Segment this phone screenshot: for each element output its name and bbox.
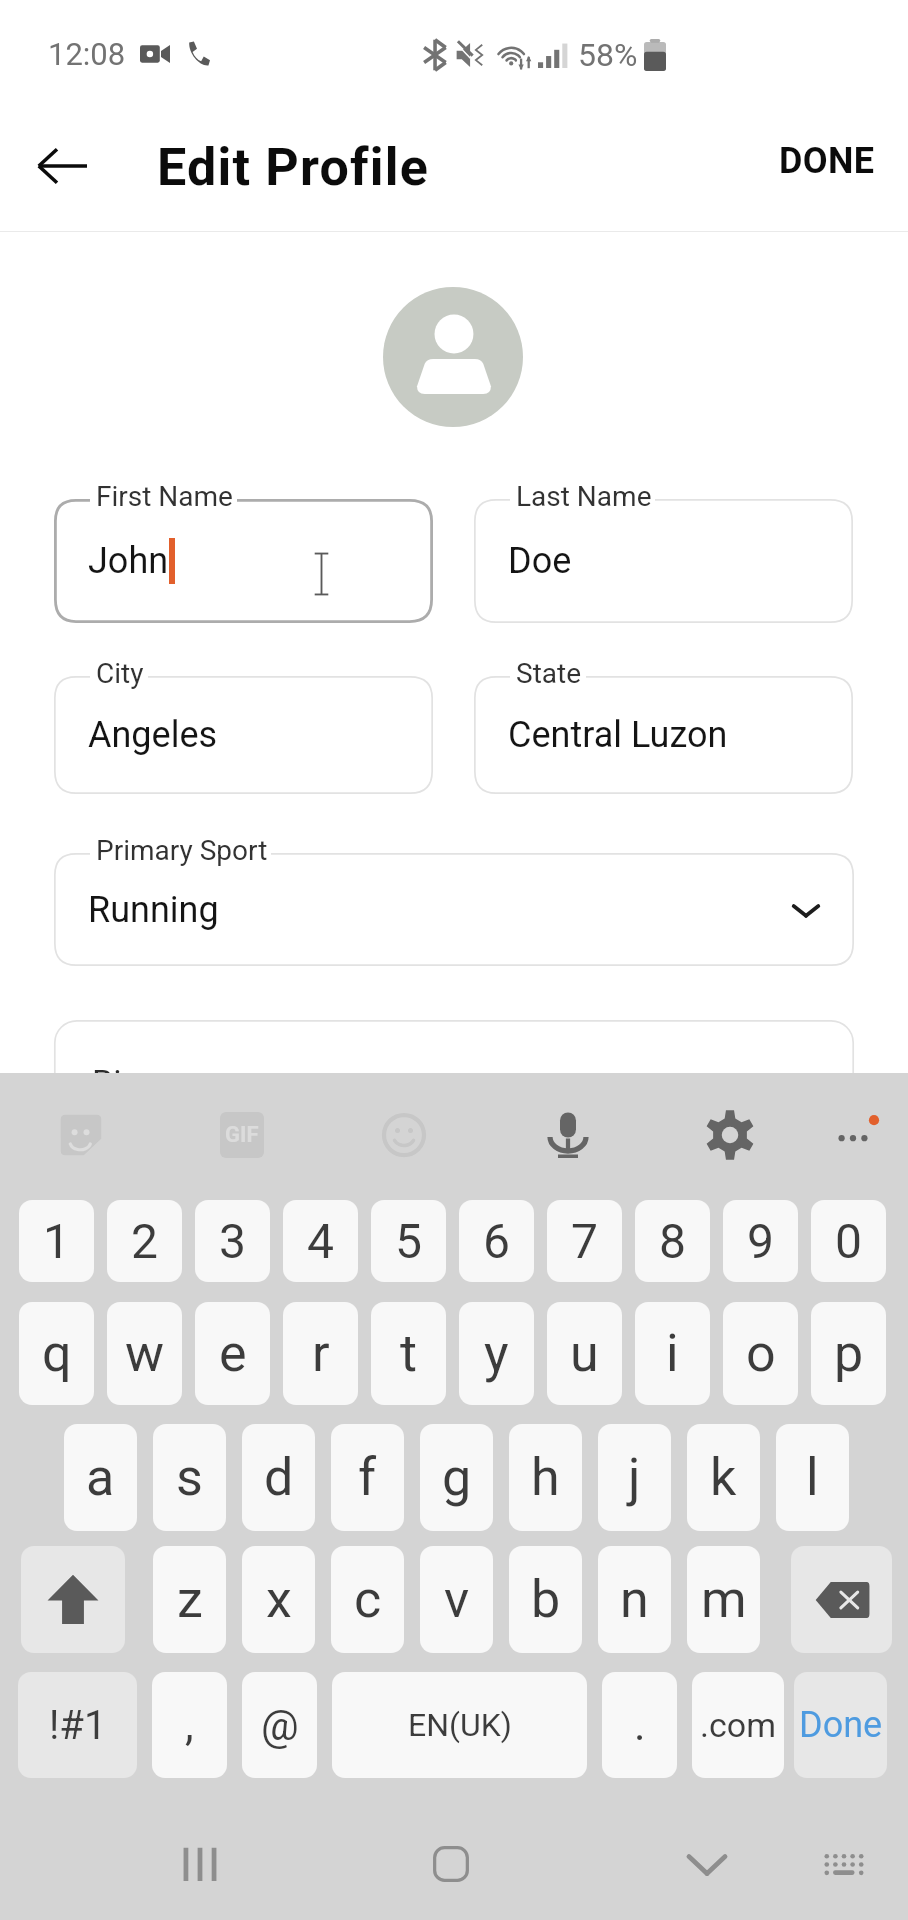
button[interactable]: Bio: [54, 1020, 854, 1180]
staticText: o: [746, 1323, 776, 1384]
button[interactable]: 3: [195, 1200, 270, 1282]
button[interactable]: l: [776, 1424, 849, 1531]
button[interactable]: EN(UK): [332, 1672, 587, 1778]
button[interactable]: 4: [283, 1200, 358, 1282]
button[interactable]: w: [107, 1302, 182, 1405]
button[interactable]: State: [474, 676, 853, 794]
button[interactable]: u: [547, 1302, 622, 1405]
button[interactable]: k: [687, 1424, 760, 1531]
button[interactable]: .com: [692, 1672, 784, 1778]
staticText: Running: [88, 889, 219, 931]
staticText: w: [125, 1323, 165, 1384]
button[interactable]: 8: [635, 1200, 710, 1282]
staticText: DONE: [779, 140, 875, 182]
button[interactable]: 1: [19, 1200, 94, 1282]
staticText: 5: [395, 1213, 422, 1269]
staticText: Angeles: [88, 714, 218, 756]
button[interactable]: 2: [107, 1200, 182, 1282]
button[interactable]: ,: [152, 1672, 227, 1778]
button[interactable]: @: [242, 1672, 317, 1778]
staticText: 0: [835, 1213, 862, 1269]
button[interactable]: x: [242, 1546, 315, 1653]
button[interactable]: h: [509, 1424, 582, 1531]
staticText: !#1: [49, 1702, 107, 1749]
button[interactable]: Keyboard tool: [364, 1095, 444, 1175]
staticText: u: [570, 1323, 599, 1384]
button[interactable]: Keyboard tool: [690, 1095, 770, 1175]
button[interactable]: n: [598, 1546, 671, 1653]
staticText: Done: [799, 1704, 883, 1746]
staticText: 6: [483, 1213, 510, 1269]
button[interactable]: GIF: [202, 1095, 282, 1175]
button[interactable]: Shift: [21, 1546, 125, 1653]
button[interactable]: r: [283, 1302, 358, 1405]
button[interactable]: g: [420, 1424, 493, 1531]
staticText: z: [177, 1569, 203, 1630]
button[interactable]: 9: [723, 1200, 798, 1282]
staticText: j: [628, 1447, 641, 1508]
button[interactable]: i: [635, 1302, 710, 1405]
button[interactable]: c: [331, 1546, 404, 1653]
button[interactable]: 0: [811, 1200, 886, 1282]
staticText: g: [442, 1447, 472, 1508]
button[interactable]: o: [723, 1302, 798, 1405]
staticText: h: [531, 1447, 560, 1508]
button[interactable]: v: [420, 1546, 493, 1653]
button[interactable]: Done: [794, 1672, 887, 1778]
button[interactable]: m: [687, 1546, 760, 1653]
button[interactable]: Change profile photo: [383, 287, 523, 427]
staticText: City: [96, 657, 144, 690]
button[interactable]: Hide keyboard: [673, 1830, 741, 1898]
button[interactable]: First Name: [54, 499, 433, 623]
staticText: 1: [43, 1213, 70, 1269]
staticText: 12:08: [48, 36, 126, 72]
button[interactable]: Backspace: [791, 1546, 892, 1653]
button[interactable]: Home: [417, 1830, 485, 1898]
button[interactable]: !#1: [18, 1672, 137, 1778]
button[interactable]: s: [153, 1424, 226, 1531]
staticText: EN(UK): [408, 1706, 512, 1744]
staticText: x: [266, 1569, 292, 1630]
button[interactable]: Primary Sport: [54, 853, 854, 966]
button[interactable]: .: [602, 1672, 677, 1778]
button[interactable]: 7: [547, 1200, 622, 1282]
staticText: r: [312, 1323, 330, 1384]
button[interactable]: Keyboard tool: [816, 1091, 896, 1171]
staticText: Edit Profile: [157, 137, 430, 198]
staticText: m: [701, 1569, 747, 1630]
staticText: ,: [185, 1699, 194, 1751]
button[interactable]: 6: [459, 1200, 534, 1282]
staticText: John: [88, 540, 169, 582]
staticText: 4: [307, 1213, 334, 1269]
staticText: a: [86, 1447, 115, 1508]
button[interactable]: b: [509, 1546, 582, 1653]
button[interactable]: City: [54, 676, 433, 794]
staticText: 7: [571, 1213, 598, 1269]
button[interactable]: p: [811, 1302, 886, 1405]
button[interactable]: Keyboard tool: [528, 1096, 608, 1176]
button[interactable]: q: [19, 1302, 94, 1405]
button[interactable]: DONE: [761, 130, 893, 192]
button[interactable]: t: [371, 1302, 446, 1405]
button[interactable]: Back: [27, 131, 97, 201]
button[interactable]: Last Name: [474, 499, 853, 623]
button[interactable]: y: [459, 1302, 534, 1405]
staticText: 2: [131, 1213, 158, 1269]
staticText: l: [806, 1447, 819, 1508]
button[interactable]: 5: [371, 1200, 446, 1282]
button[interactable]: z: [153, 1546, 226, 1653]
button[interactable]: j: [598, 1424, 671, 1531]
button[interactable]: a: [64, 1424, 137, 1531]
staticText: 3: [219, 1213, 246, 1269]
staticText: 8: [659, 1213, 686, 1269]
button[interactable]: d: [242, 1424, 315, 1531]
button[interactable]: e: [195, 1302, 270, 1405]
staticText: GIF: [225, 1122, 259, 1148]
button[interactable]: Switch keyboard: [813, 1830, 875, 1898]
button[interactable]: Keyboard tool: [41, 1095, 121, 1175]
button[interactable]: Recents: [166, 1830, 234, 1898]
staticText: 9: [747, 1213, 774, 1269]
staticText: State: [516, 657, 582, 690]
button[interactable]: f: [331, 1424, 404, 1531]
staticText: 58%: [578, 36, 638, 74]
